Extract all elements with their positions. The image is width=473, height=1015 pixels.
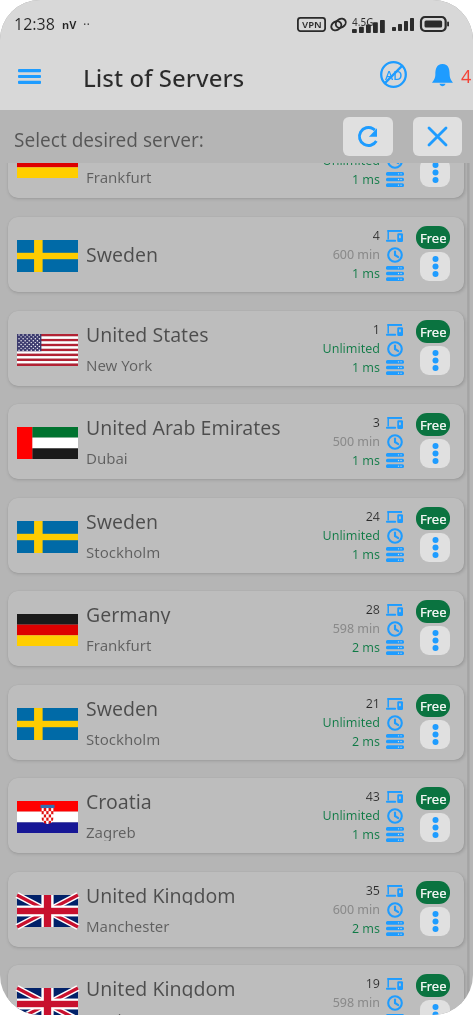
button[interactable]: More options (420, 720, 450, 749)
button[interactable]: More options (420, 626, 450, 655)
button[interactable]: More options (420, 533, 450, 562)
staticText: 600 min (332, 901, 380, 918)
button[interactable]: United Kingdom (8, 965, 464, 1015)
staticText: Sweden (86, 241, 159, 268)
staticText: Germany (86, 601, 171, 624)
staticText: Frankfurt (86, 635, 152, 654)
staticText: 600 min (332, 246, 380, 263)
button[interactable]: More options (420, 907, 450, 936)
button[interactable]: United Kingdom (8, 872, 464, 947)
staticText: 21 (365, 695, 380, 712)
button[interactable]: Free (416, 974, 450, 997)
staticText: Stockholm (86, 542, 161, 561)
staticText: 3 (372, 414, 380, 431)
button[interactable]: Menu (8, 56, 50, 96)
button[interactable]: More options (420, 439, 450, 468)
staticText: 2 ms (351, 733, 380, 750)
staticText: 1 ms (351, 359, 380, 376)
staticText: Zagreb (86, 822, 136, 841)
staticText: List of Servers (83, 61, 245, 94)
staticText: Croatia (86, 788, 152, 811)
button[interactable]: Refresh (343, 117, 393, 156)
button[interactable]: More options (420, 252, 450, 281)
staticText: Free (420, 510, 447, 528)
staticText: United Kingdom (86, 882, 236, 905)
button[interactable]: Free (416, 787, 450, 810)
staticText: Free (420, 790, 447, 808)
staticText: nV (62, 17, 77, 32)
button[interactable]: Free (416, 226, 450, 249)
staticText: 4 (461, 64, 472, 89)
staticText: Frankfurt (86, 167, 152, 186)
button[interactable]: Free (416, 320, 450, 343)
staticText: Free (420, 323, 447, 341)
staticText: 2 ms (351, 639, 380, 656)
button[interactable]: United Arab Emirates (8, 404, 464, 479)
button[interactable]: Close (413, 117, 462, 156)
button[interactable]: Free (416, 507, 450, 530)
button[interactable]: Germany (8, 163, 464, 198)
staticText: 35 (365, 882, 380, 899)
staticText: 24 (365, 508, 380, 525)
button[interactable]: Notifications (424, 56, 460, 94)
staticText: 12:38 (14, 13, 55, 35)
staticText: AD (385, 67, 403, 84)
staticText: 28 (365, 601, 380, 618)
button[interactable]: More options (420, 163, 450, 187)
staticText: 43 (365, 788, 380, 805)
staticText: ·· (83, 15, 90, 33)
staticText: London (86, 1009, 140, 1015)
staticText: New York (86, 355, 153, 374)
staticText: United Kingdom (86, 975, 236, 998)
staticText: 1 ms (351, 826, 380, 843)
button[interactable]: Germany (8, 591, 464, 666)
staticText: Free (420, 603, 447, 621)
staticText: Manchester (86, 916, 170, 935)
button[interactable]: Ad blocker (374, 55, 412, 93)
staticText: United States (86, 321, 209, 344)
staticText: 598 min (332, 620, 380, 637)
staticText: Sweden (86, 695, 159, 718)
staticText: Free (420, 229, 447, 247)
button[interactable]: Free (416, 600, 450, 623)
staticText: 2 ms (351, 920, 380, 937)
button[interactable]: More options (420, 1000, 450, 1015)
staticText: Sweden (86, 508, 159, 531)
staticText: 1 (372, 321, 380, 338)
button[interactable]: United States (8, 311, 464, 386)
staticText: 1 ms (351, 546, 380, 563)
staticText: 1 ms (351, 171, 380, 188)
button[interactable]: More options (420, 346, 450, 375)
staticText: Unlimited (322, 714, 380, 731)
staticText: Free (420, 977, 447, 995)
button[interactable]: Free (416, 694, 450, 717)
button[interactable]: Croatia (8, 778, 464, 853)
staticText: Unlimited (322, 527, 380, 544)
staticText: United Arab Emirates (86, 414, 281, 437)
staticText: Stockholm (86, 729, 161, 748)
button[interactable]: Free (416, 881, 450, 904)
staticText: Free (420, 884, 447, 902)
button[interactable]: Sweden (8, 685, 464, 760)
staticText: 19 (365, 975, 380, 992)
staticText: Unlimited (322, 163, 380, 169)
staticText: 598 min (332, 994, 380, 1011)
staticText: Unlimited (322, 340, 380, 357)
button[interactable]: Sweden (8, 217, 464, 292)
staticText: 4 (372, 227, 380, 244)
staticText: Select desired server: (14, 127, 204, 153)
staticText: 4.5G (352, 15, 374, 29)
staticText: 1 ms (351, 452, 380, 469)
button[interactable]: Free (416, 413, 450, 436)
staticText: 1 ms (351, 265, 380, 282)
staticText: Dubai (86, 448, 128, 467)
button[interactable]: More options (420, 813, 450, 842)
staticText: Free (420, 416, 447, 434)
staticText: 500 min (332, 433, 380, 450)
staticText: Unlimited (322, 807, 380, 824)
staticText: VPN (302, 18, 322, 31)
staticText: Free (420, 697, 447, 715)
button[interactable]: Sweden (8, 498, 464, 573)
